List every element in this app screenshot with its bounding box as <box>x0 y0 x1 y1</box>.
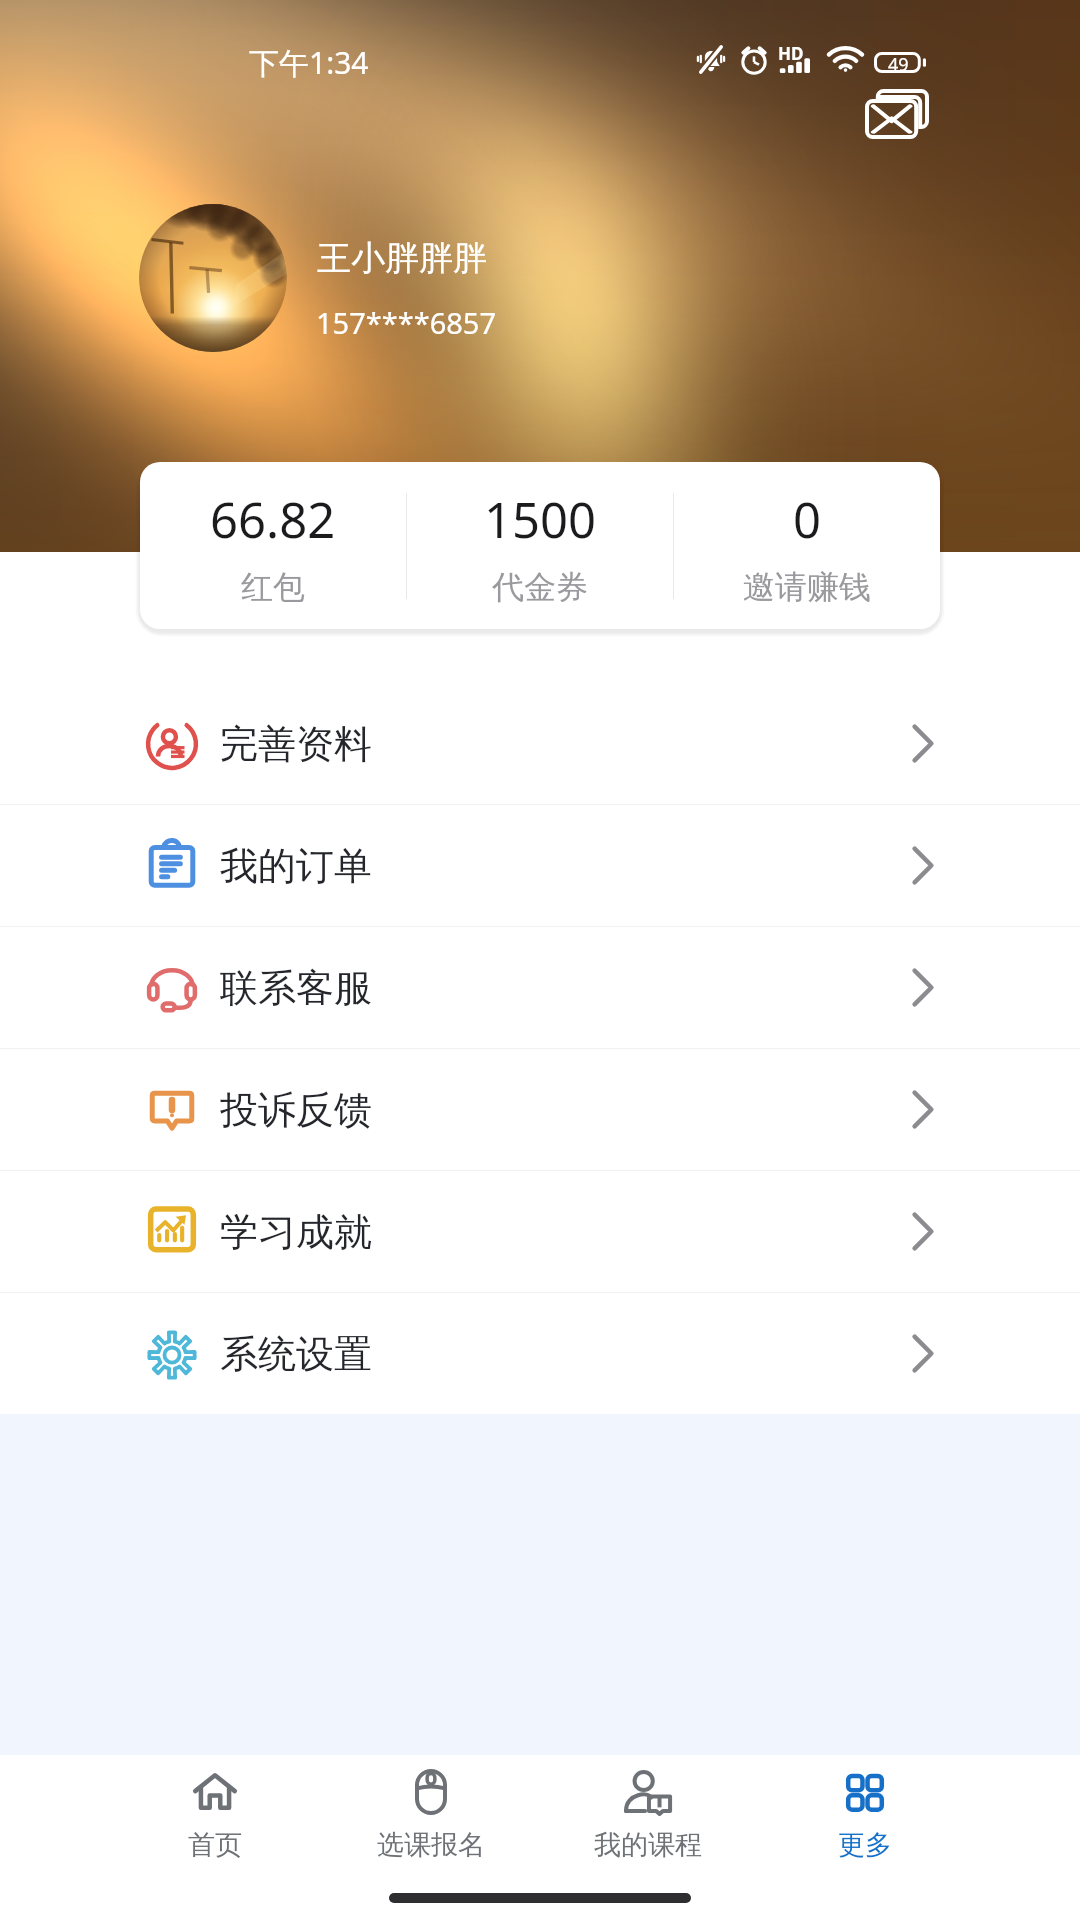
staticText: 王小胖胖胖 <box>317 237 487 280</box>
staticText: 我的课程 <box>594 1828 702 1862</box>
button[interactable]: 更多 <box>756 1755 973 1875</box>
staticText: 系统设置 <box>220 1330 372 1378</box>
button[interactable]: 完善资料 <box>0 683 1080 804</box>
button[interactable]: Messages <box>865 89 929 139</box>
button[interactable]: 首页 <box>107 1755 323 1875</box>
staticText: 选课报名 <box>377 1828 485 1862</box>
button[interactable]: 我的订单 <box>0 805 1080 926</box>
staticText: 1500 <box>484 486 597 553</box>
staticText: 0 <box>793 486 822 553</box>
button[interactable]: 联系客服 <box>0 927 1080 1048</box>
staticText: 完善资料 <box>220 720 372 768</box>
staticText: 我的订单 <box>220 842 372 890</box>
staticText: 下午1:34 <box>249 42 369 83</box>
button[interactable]: 系统设置 <box>0 1293 1080 1414</box>
button[interactable]: 66.82 <box>140 462 406 629</box>
staticText: 学习成就 <box>220 1208 372 1256</box>
staticText: 157****6857 <box>316 303 497 342</box>
staticText: 49 <box>888 52 909 73</box>
staticText: 更多 <box>838 1828 892 1862</box>
staticText: 代金券 <box>492 567 588 607</box>
staticText: 邀请赚钱 <box>743 567 871 607</box>
staticText: 66.82 <box>210 486 336 553</box>
button[interactable]: 1500 <box>407 462 673 629</box>
staticText: 首页 <box>188 1828 242 1862</box>
staticText: 投诉反馈 <box>220 1086 372 1134</box>
button[interactable]: 学习成就 <box>0 1171 1080 1292</box>
button[interactable]: 0 <box>674 462 940 629</box>
staticText: 红包 <box>241 567 305 607</box>
staticText: 联系客服 <box>220 964 372 1012</box>
button[interactable]: 投诉反馈 <box>0 1049 1080 1170</box>
button[interactable]: 选课报名 <box>323 1755 539 1875</box>
button[interactable]: 我的课程 <box>539 1755 756 1875</box>
staticText: HD <box>778 42 804 65</box>
